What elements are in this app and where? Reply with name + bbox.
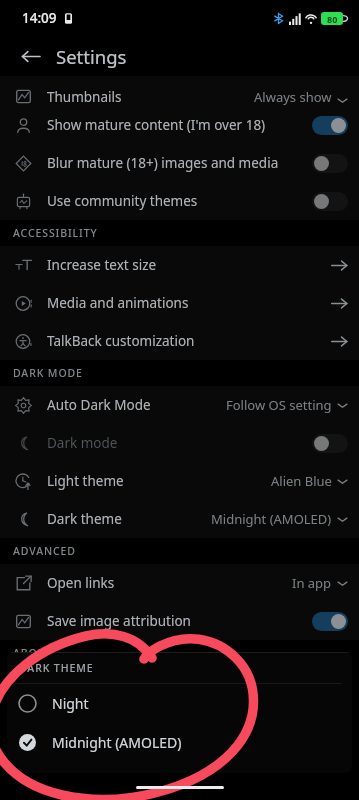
button[interactable]: Switch off xyxy=(312,434,348,453)
button[interactable]: Increase text size xyxy=(0,246,359,284)
staticText: DARK MODE xyxy=(13,366,83,380)
button[interactable]: Save image attribution xyxy=(0,602,359,640)
button[interactable]: Switch on xyxy=(312,116,348,135)
staticText: Settings xyxy=(56,44,127,69)
staticText: Save image attribution xyxy=(47,612,191,630)
button[interactable]: Switch off xyxy=(312,154,348,173)
staticText: Follow OS setting xyxy=(226,396,332,414)
staticText: Midnight (AMOLED) xyxy=(52,733,182,752)
staticText: Use community themes xyxy=(47,192,198,210)
staticText: Always show xyxy=(254,88,332,106)
button[interactable]: Night xyxy=(7,684,352,723)
staticText: 14:09 xyxy=(22,9,57,27)
staticText: Midnight (AMOLED) xyxy=(211,510,332,528)
staticText: 80 xyxy=(327,13,338,25)
button[interactable]: Thumbnails xyxy=(0,76,359,106)
staticText: Show mature content (I'm over 18) xyxy=(47,116,266,134)
staticText: Open links xyxy=(47,574,115,592)
staticText: Dark mode xyxy=(47,434,118,452)
button[interactable]: Dark theme xyxy=(0,500,359,538)
staticText: Alien Blue xyxy=(271,472,332,490)
staticText: Dark theme xyxy=(47,510,122,528)
button[interactable]: Media and animations xyxy=(0,284,359,322)
button[interactable]: Switch off xyxy=(312,192,348,211)
button[interactable]: Show mature content (I'm over 18) xyxy=(0,106,359,144)
staticText: Increase text size xyxy=(47,256,157,274)
staticText: TalkBack customization xyxy=(47,332,195,350)
button[interactable]: Use community themes xyxy=(0,182,359,220)
staticText: ADVANCED xyxy=(13,544,76,558)
button[interactable]: Blur mature (18+) images and media xyxy=(0,144,359,182)
staticText: DARK THEME xyxy=(19,661,94,675)
staticText: Night xyxy=(52,694,89,713)
button[interactable]: Switch on xyxy=(312,612,348,631)
staticText: Auto Dark Mode xyxy=(47,396,151,414)
button[interactable]: Light theme xyxy=(0,462,359,500)
button[interactable]: Auto Dark Mode xyxy=(0,386,359,424)
staticText: Blur mature (18+) images and media xyxy=(47,154,279,172)
staticText: ACCESSIBILITY xyxy=(13,226,98,240)
staticText: Light theme xyxy=(47,472,124,490)
staticText: In app xyxy=(292,574,332,592)
button[interactable]: Back xyxy=(13,39,47,73)
button[interactable]: Open links xyxy=(0,564,359,602)
staticText: Thumbnails xyxy=(47,88,122,106)
button[interactable]: TalkBack customization xyxy=(0,322,359,360)
staticText: ABOUT xyxy=(13,646,54,660)
button[interactable]: Midnight (AMOLED) xyxy=(7,723,352,762)
button[interactable]: Dark mode xyxy=(0,424,359,462)
staticText: Media and animations xyxy=(47,294,189,312)
